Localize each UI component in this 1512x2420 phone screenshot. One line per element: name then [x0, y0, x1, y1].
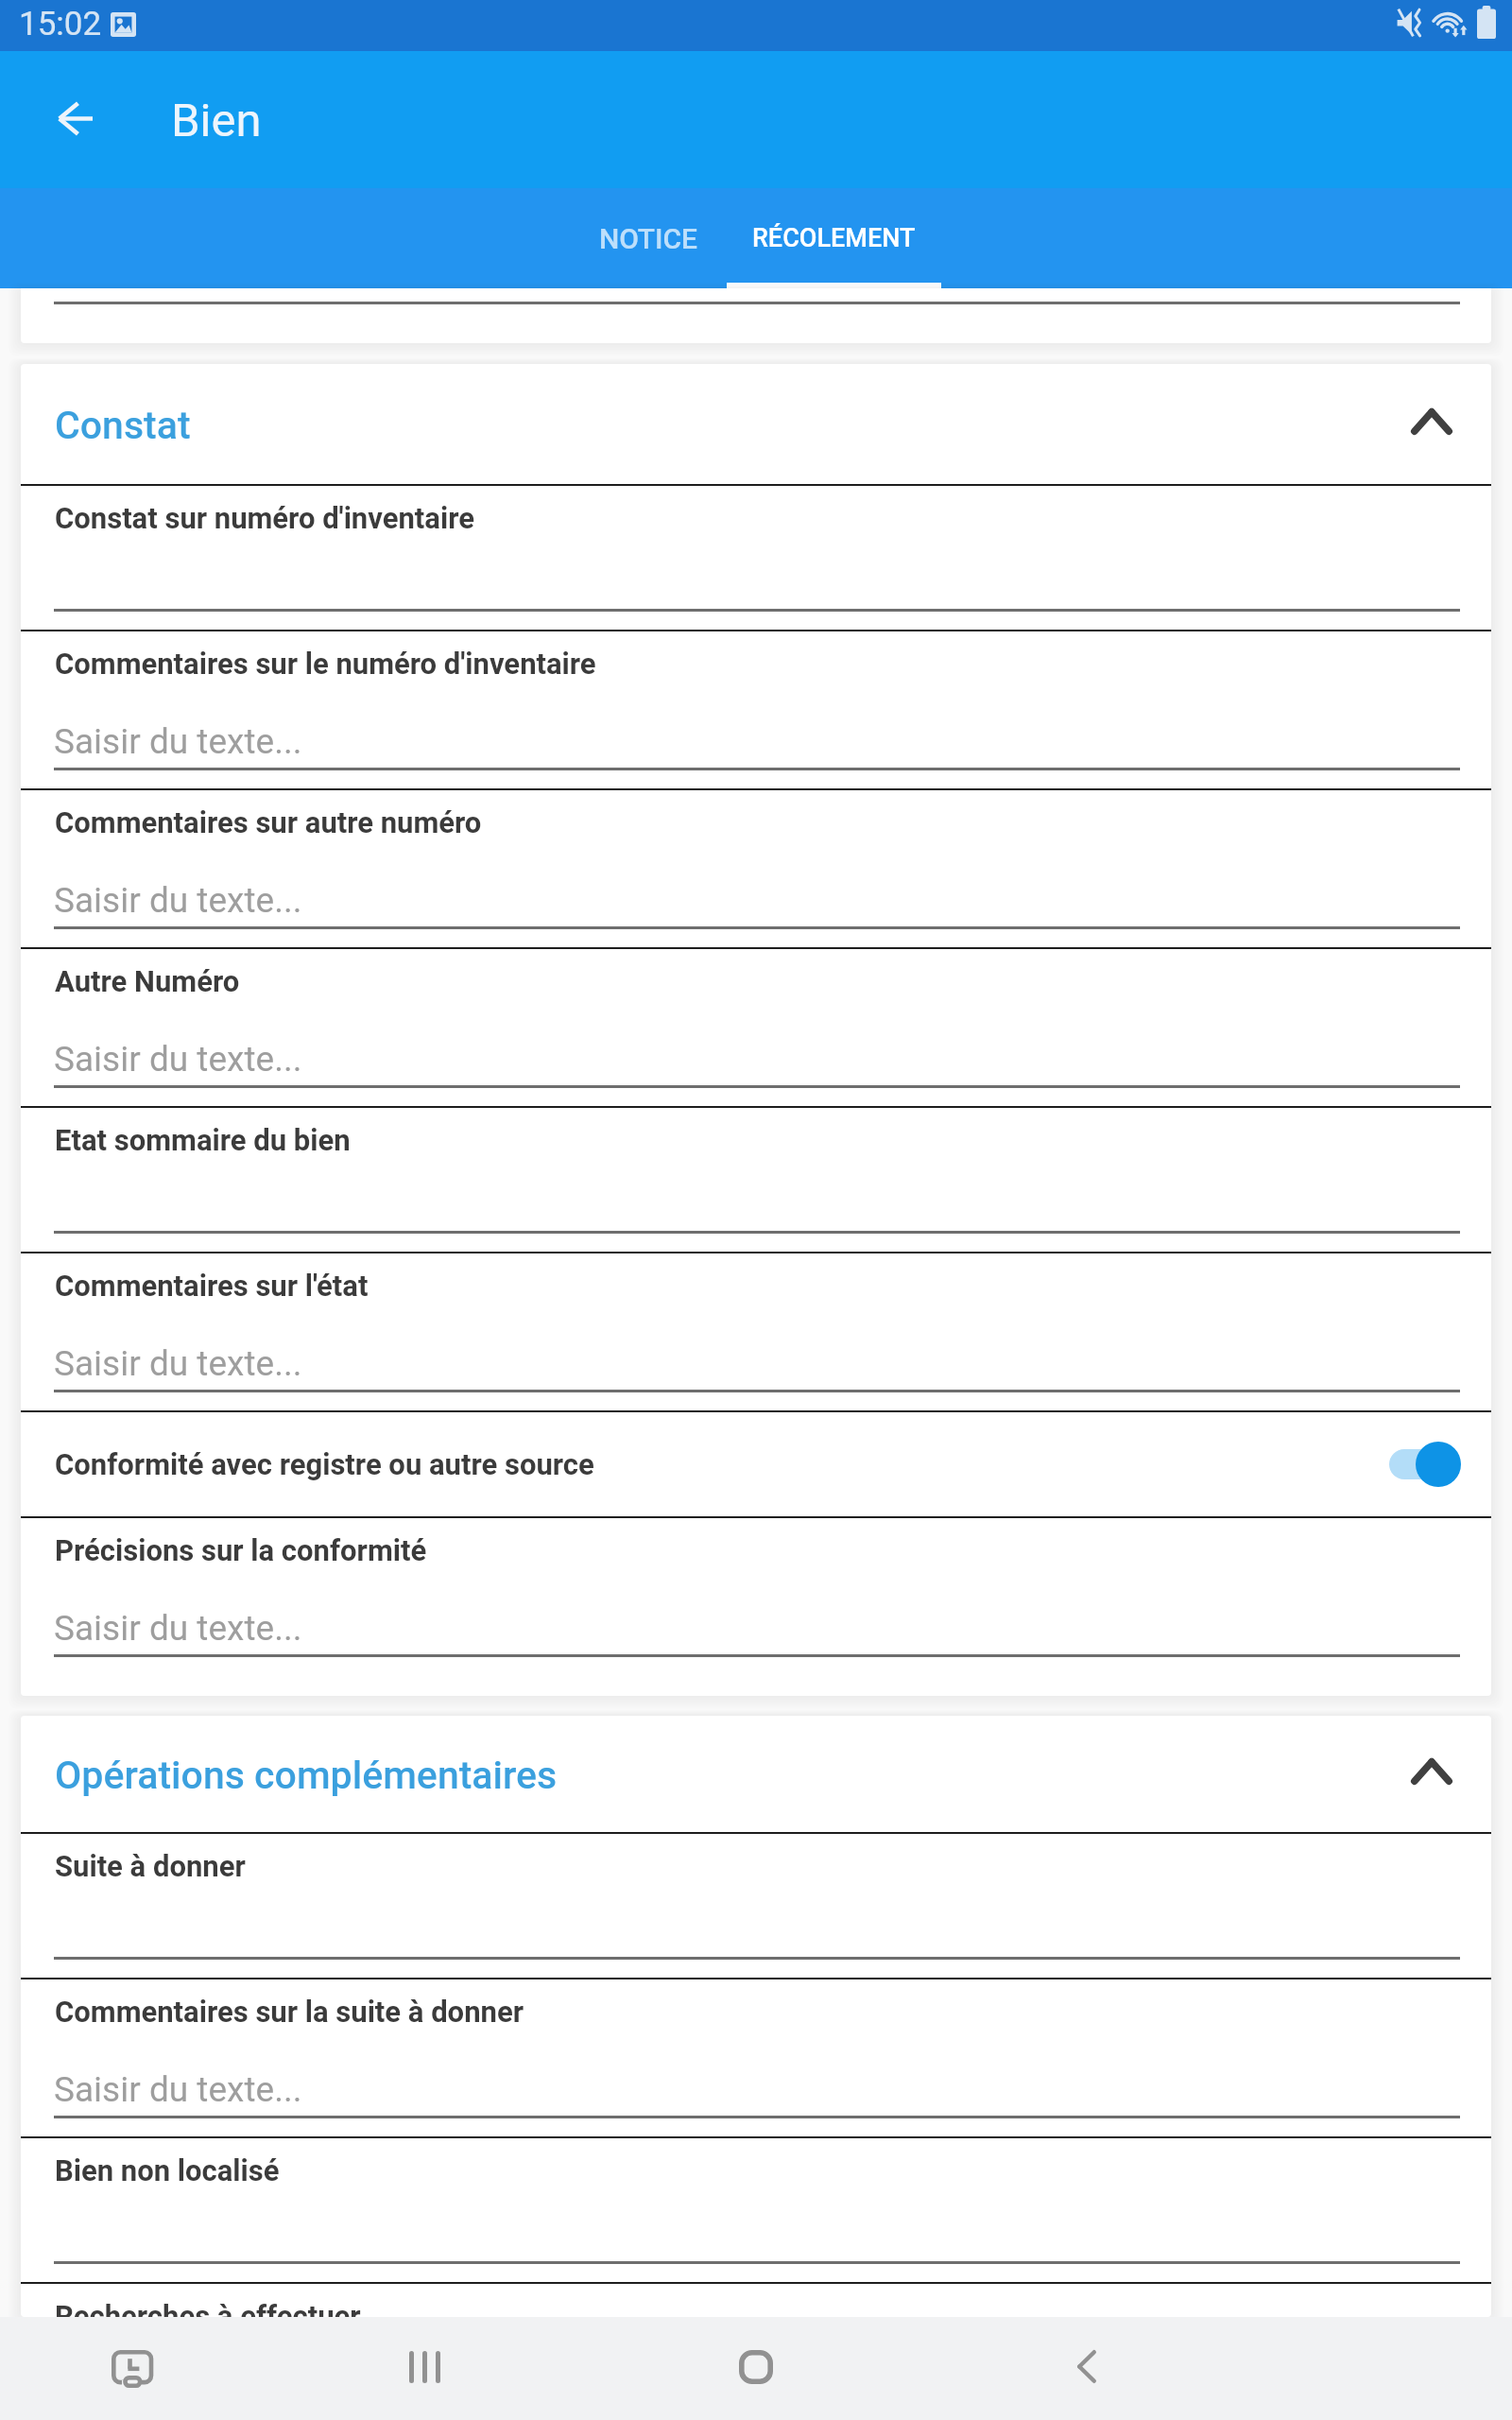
button[interactable]: Back — [29, 73, 120, 164]
button[interactable]: Suite à donner — [21, 1834, 1491, 1978]
button[interactable]: Hide keyboard — [76, 2318, 189, 2420]
button[interactable]: NOTICE — [538, 188, 759, 288]
staticText: Conformité avec registre ou autre source — [55, 1447, 594, 1481]
button[interactable]: RÉCOLEMENT — [727, 188, 941, 288]
other: Collapse section — [1402, 392, 1461, 451]
staticText: Saisir du texte... — [54, 1343, 302, 1384]
staticText: Précisions sur la conformité — [55, 1533, 427, 1567]
staticText: Constat — [55, 403, 191, 448]
staticText: Saisir du texte... — [54, 721, 302, 762]
staticText: RÉCOLEMENT — [752, 223, 916, 253]
staticText: Recherches à effectuer — [55, 2299, 361, 2317]
button[interactable]: Home — [699, 2315, 813, 2418]
button[interactable]: Constat — [21, 364, 1491, 484]
staticText: Saisir du texte... — [54, 880, 302, 921]
staticText: Saisir du texte... — [54, 1039, 302, 1080]
button[interactable]: Constat sur numéro d'inventaire — [21, 486, 1491, 630]
staticText: Commentaires sur autre numéro — [55, 805, 482, 839]
staticText: 15:02 — [19, 5, 102, 43]
staticText: Autre Numéro — [55, 964, 240, 998]
staticText: Opérations complémentaires — [55, 1753, 558, 1798]
button[interactable]: Back — [1030, 2315, 1143, 2418]
button[interactable]: Commentaires sur la suite à donner — [21, 1979, 1491, 2136]
staticText: Constat sur numéro d'inventaire — [55, 501, 474, 535]
button[interactable]: Commentaires sur l'état — [21, 1253, 1491, 1410]
staticText: Commentaires sur le numéro d'inventaire — [55, 647, 596, 681]
staticText: Saisir du texte... — [54, 1608, 302, 1649]
button[interactable]: Recherches à effectuer — [21, 2284, 1491, 2317]
button[interactable]: Autre Numéro — [21, 949, 1491, 1106]
staticText: NOTICE — [599, 222, 698, 255]
other: Collapse section — [1402, 1742, 1461, 1801]
button[interactable]: Opérations complémentaires — [21, 1716, 1491, 1832]
staticText: Suite à donner — [55, 1849, 246, 1883]
staticText: Etat sommaire du bien — [55, 1123, 351, 1157]
button[interactable]: Bien non localisé — [21, 2138, 1491, 2282]
staticText: Commentaires sur l'état — [55, 1269, 369, 1303]
button[interactable]: Recent apps — [368, 2315, 481, 2418]
staticText: Bien — [171, 94, 262, 147]
staticText: Commentaires sur la suite à donner — [55, 1995, 524, 2029]
button[interactable]: Conformité avec registre ou autre source — [21, 1412, 1491, 1516]
staticText: Bien non localisé — [55, 2153, 280, 2187]
staticText: Saisir du texte... — [54, 2069, 302, 2110]
button[interactable]: Commentaires sur le numéro d'inventaire — [21, 631, 1491, 788]
button[interactable]: Précisions sur la conformité — [21, 1518, 1491, 1675]
button[interactable]: Etat sommaire du bien — [21, 1108, 1491, 1252]
button[interactable]: Commentaires sur autre numéro — [21, 790, 1491, 947]
